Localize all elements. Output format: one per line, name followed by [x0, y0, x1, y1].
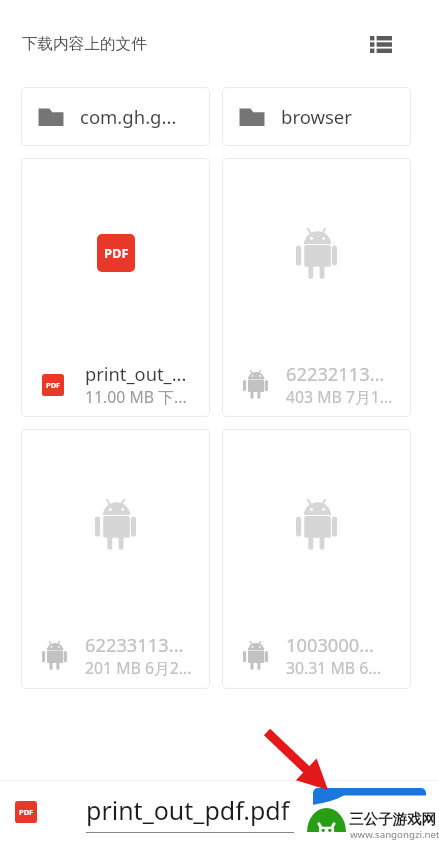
staticText: 30.31 MB 6...	[286, 657, 381, 679]
staticText: 403 MB 7月1...	[286, 386, 393, 408]
staticText: print_out_...	[85, 361, 187, 386]
staticText: 保存	[388, 798, 416, 816]
button[interactable]: 62233113...	[21, 429, 210, 689]
staticText: 11.00 MB 下...	[85, 386, 187, 408]
button[interactable]: print_out_pdf.pdf	[86, 789, 300, 834]
staticText: 三公子游戏网	[349, 810, 436, 828]
staticText: print_out_pdf.pdf	[86, 793, 290, 827]
staticText: 下载内容上的文件	[22, 34, 147, 54]
staticText: 201 MB 6月2...	[85, 657, 192, 679]
button[interactable]: com.gh.g...	[21, 87, 210, 146]
staticText: 62232113...	[286, 361, 385, 386]
button[interactable]: List view	[364, 27, 398, 61]
staticText: PDF	[19, 807, 34, 817]
staticText: browser	[281, 104, 352, 129]
staticText: PDF	[104, 244, 129, 262]
button[interactable]: browser	[222, 87, 411, 146]
staticText: 62233113...	[85, 632, 184, 657]
staticText: www.sangongzi.net	[350, 828, 439, 841]
button[interactable]: Save	[313, 788, 426, 822]
button[interactable]: 62232113...	[222, 158, 411, 417]
staticText: PDF	[46, 380, 61, 390]
button[interactable]: 1003000...	[222, 429, 411, 689]
staticText: 1003000...	[286, 632, 374, 657]
staticText: com.gh.g...	[80, 104, 177, 129]
button[interactable]: PDF	[21, 158, 210, 417]
